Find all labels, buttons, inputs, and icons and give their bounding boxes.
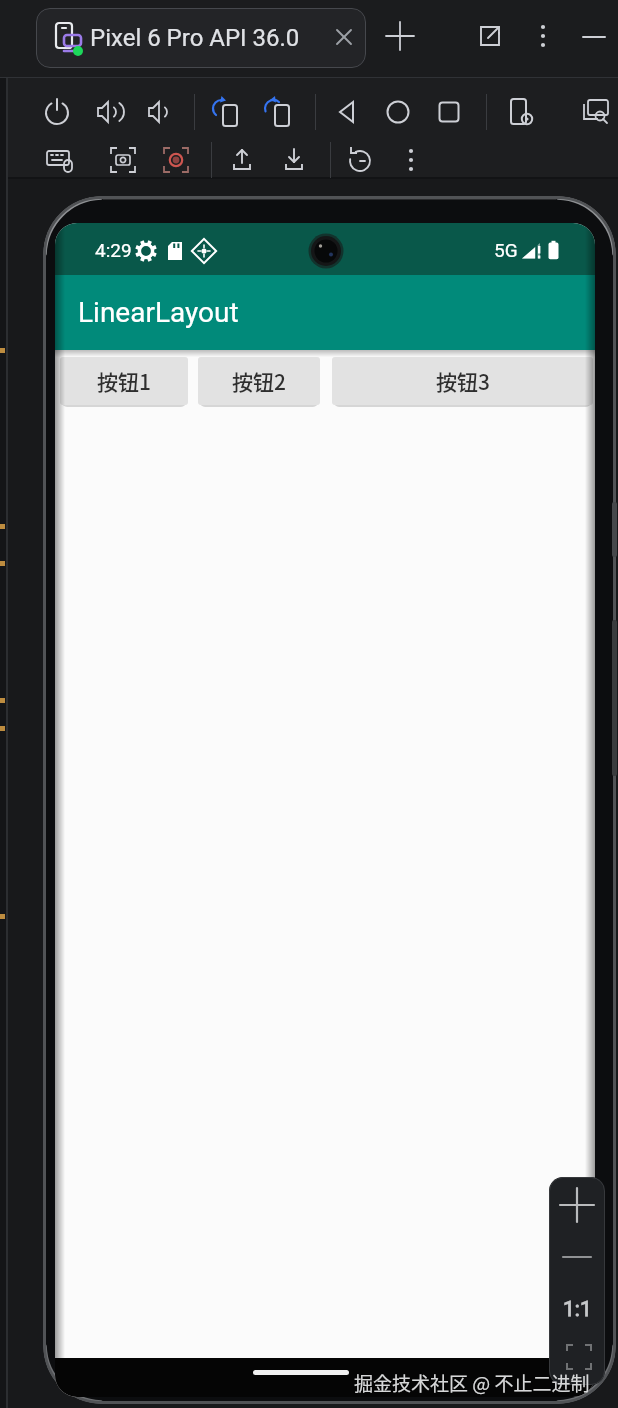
staticText: 5G (494, 239, 518, 261)
button[interactable] (42, 142, 78, 178)
button[interactable] (329, 94, 365, 130)
button[interactable] (91, 94, 127, 130)
button[interactable] (393, 142, 429, 178)
button[interactable]: 1:1 (552, 1292, 602, 1326)
button[interactable] (559, 1239, 595, 1275)
button[interactable]: 按钮3 (332, 357, 593, 405)
staticText: 4:29 (95, 239, 132, 261)
button[interactable] (342, 142, 378, 178)
button[interactable] (36, 8, 366, 68)
button[interactable] (382, 18, 418, 54)
button[interactable] (140, 94, 176, 130)
button[interactable] (431, 94, 467, 130)
button[interactable] (578, 94, 614, 130)
staticText: LinearLayout (78, 296, 239, 329)
button[interactable] (473, 19, 507, 53)
button[interactable] (503, 94, 539, 130)
button[interactable] (329, 22, 359, 52)
button[interactable] (262, 94, 298, 130)
button[interactable] (528, 21, 558, 51)
staticText: Pixel 6 Pro API 36.0 (90, 24, 300, 52)
button[interactable] (380, 94, 416, 130)
staticText: 1:1 (563, 1297, 592, 1322)
staticText: 按钮3 (436, 366, 490, 396)
button[interactable] (158, 142, 194, 178)
staticText: 按钮2 (232, 366, 286, 396)
button[interactable]: 按钮2 (198, 357, 320, 405)
button[interactable] (557, 1185, 597, 1225)
staticText: 掘金技术社区 @ 不止二进制 (354, 1369, 590, 1397)
button[interactable] (210, 94, 246, 130)
button[interactable] (562, 1340, 596, 1374)
button[interactable] (39, 94, 75, 130)
staticText: 按钮1 (97, 366, 151, 396)
button[interactable] (579, 22, 609, 52)
button[interactable] (224, 142, 260, 178)
button[interactable] (105, 142, 141, 178)
button[interactable]: 按钮1 (60, 357, 188, 405)
button[interactable] (276, 142, 312, 178)
